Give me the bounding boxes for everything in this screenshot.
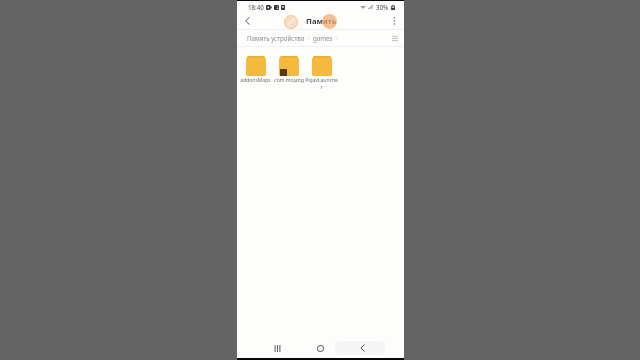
button[interactable]: addonsMaps xyxy=(239,56,272,84)
staticText: 30% xyxy=(376,3,389,11)
button[interactable]: Память устройства xyxy=(247,34,338,42)
staticText: Память устройства xyxy=(247,34,305,42)
button[interactable]: PojavLauncher xyxy=(305,56,338,91)
staticText: 18:40 xyxy=(248,3,264,11)
button[interactable]: More options xyxy=(387,14,401,28)
button[interactable]: Change view xyxy=(387,32,399,44)
staticText: PojavLauncher xyxy=(305,77,338,91)
staticText: addonsMaps xyxy=(240,77,271,84)
button[interactable]: Back xyxy=(240,14,254,28)
button[interactable]: com.mojang xyxy=(272,56,305,84)
staticText: games xyxy=(313,34,333,42)
staticText: com.mojang xyxy=(274,77,304,84)
button[interactable]: Recent apps xyxy=(262,338,291,358)
staticText: Память xyxy=(306,16,337,27)
button[interactable]: Home xyxy=(306,338,335,358)
button[interactable]: Back xyxy=(348,338,377,358)
